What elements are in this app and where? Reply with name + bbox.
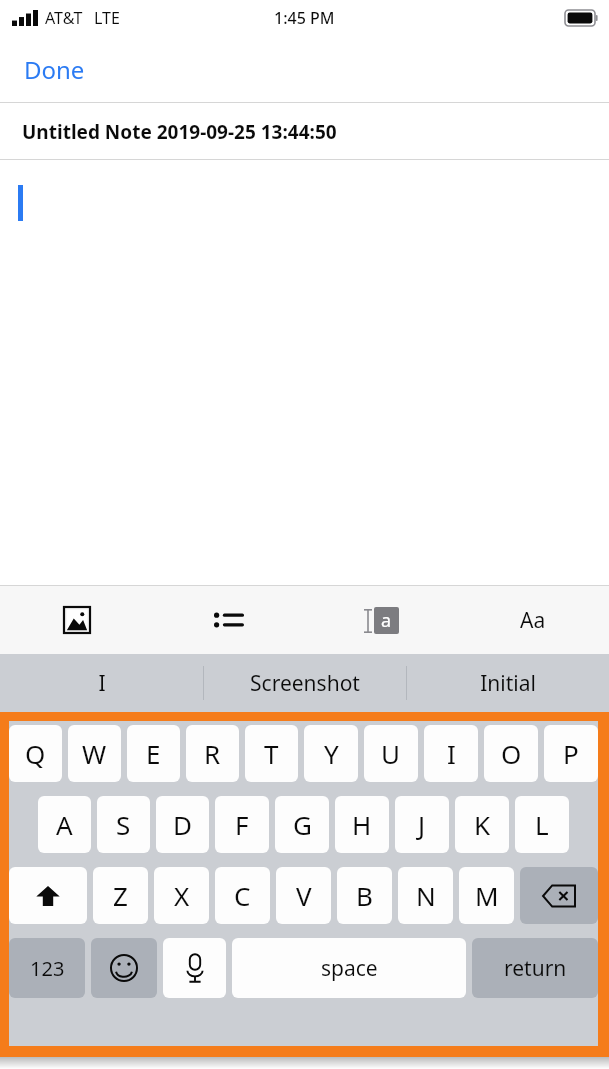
staticText: W xyxy=(82,736,107,771)
staticText: Untitled Note 2019-09-25 13:44:50 xyxy=(22,119,337,145)
staticText: T xyxy=(264,736,279,771)
staticText: LTE xyxy=(94,7,120,29)
button[interactable]: 123 xyxy=(9,938,85,998)
button[interactable]: K xyxy=(455,796,509,853)
staticText: Screenshot xyxy=(250,669,360,698)
button[interactable]: Shift xyxy=(9,867,87,924)
button[interactable]: return xyxy=(472,938,598,998)
staticText: P xyxy=(563,736,579,771)
staticText: D xyxy=(173,807,192,842)
staticText: Q xyxy=(25,736,46,771)
button[interactable]: Emoji xyxy=(91,938,157,998)
button[interactable]: C xyxy=(215,867,270,924)
staticText: M xyxy=(475,878,499,913)
staticText: A xyxy=(56,807,73,842)
staticText: U xyxy=(381,736,401,771)
button[interactable]: S xyxy=(97,796,150,853)
staticText: S xyxy=(116,807,131,842)
staticText: F xyxy=(235,807,249,842)
staticText: 123 xyxy=(30,955,65,982)
button[interactable]: A xyxy=(38,796,91,853)
button[interactable]: Dictation xyxy=(163,938,226,998)
button[interactable]: P xyxy=(544,725,598,782)
button[interactable]: Checklist xyxy=(153,586,305,654)
button[interactable]: Initial xyxy=(407,654,609,712)
staticText: G xyxy=(293,807,312,842)
button[interactable]: H xyxy=(335,796,389,853)
button[interactable]: Aa xyxy=(457,586,609,654)
staticText: X xyxy=(174,878,190,913)
staticText: E xyxy=(146,736,161,771)
button[interactable]: X xyxy=(154,867,209,924)
staticText: B xyxy=(356,878,373,913)
staticText: L xyxy=(535,807,549,842)
staticText: R xyxy=(204,736,221,771)
button[interactable]: Done xyxy=(0,43,109,96)
button[interactable]: G xyxy=(275,796,329,853)
button[interactable]: D xyxy=(156,796,209,853)
staticText: I xyxy=(447,736,456,771)
staticText: I xyxy=(98,669,106,698)
button[interactable]: O xyxy=(484,725,538,782)
staticText: Y xyxy=(324,736,339,771)
staticText: K xyxy=(474,807,491,842)
button[interactable]: V xyxy=(276,867,331,924)
button[interactable]: M xyxy=(459,867,514,924)
button[interactable]: I xyxy=(424,725,478,782)
staticText: Aa xyxy=(520,606,546,635)
staticText: N xyxy=(416,878,436,913)
button[interactable]: Text selection xyxy=(305,586,457,654)
button[interactable]: U xyxy=(364,725,418,782)
button[interactable]: B xyxy=(337,867,392,924)
button[interactable]: Insert photo xyxy=(0,586,153,654)
button[interactable]: L xyxy=(515,796,569,853)
button[interactable]: N xyxy=(398,867,453,924)
staticText: Z xyxy=(113,878,128,913)
button[interactable]: Screenshot xyxy=(204,654,406,712)
staticText: return xyxy=(504,954,567,983)
button[interactable]: Y xyxy=(304,725,358,782)
staticText: a xyxy=(381,608,392,633)
staticText: AT&T xyxy=(45,7,83,29)
button[interactable]: R xyxy=(186,725,239,782)
staticText: C xyxy=(234,878,251,913)
staticText: Done xyxy=(24,53,85,86)
staticText: J xyxy=(418,807,426,842)
button[interactable]: J xyxy=(395,796,449,853)
staticText: 1:45 PM xyxy=(274,7,335,29)
button[interactable]: Z xyxy=(93,867,148,924)
button[interactable]: T xyxy=(245,725,298,782)
staticText: H xyxy=(352,807,372,842)
button[interactable]: space xyxy=(232,938,466,998)
button[interactable]: I xyxy=(0,654,203,712)
button[interactable]: E xyxy=(127,725,180,782)
staticText: V xyxy=(296,878,312,913)
button[interactable]: Backspace xyxy=(520,867,598,924)
staticText: space xyxy=(321,954,378,983)
button[interactable]: Q xyxy=(9,725,62,782)
button[interactable]: W xyxy=(68,725,121,782)
button[interactable]: F xyxy=(215,796,269,853)
staticText: O xyxy=(501,736,522,771)
staticText: Initial xyxy=(480,669,536,698)
